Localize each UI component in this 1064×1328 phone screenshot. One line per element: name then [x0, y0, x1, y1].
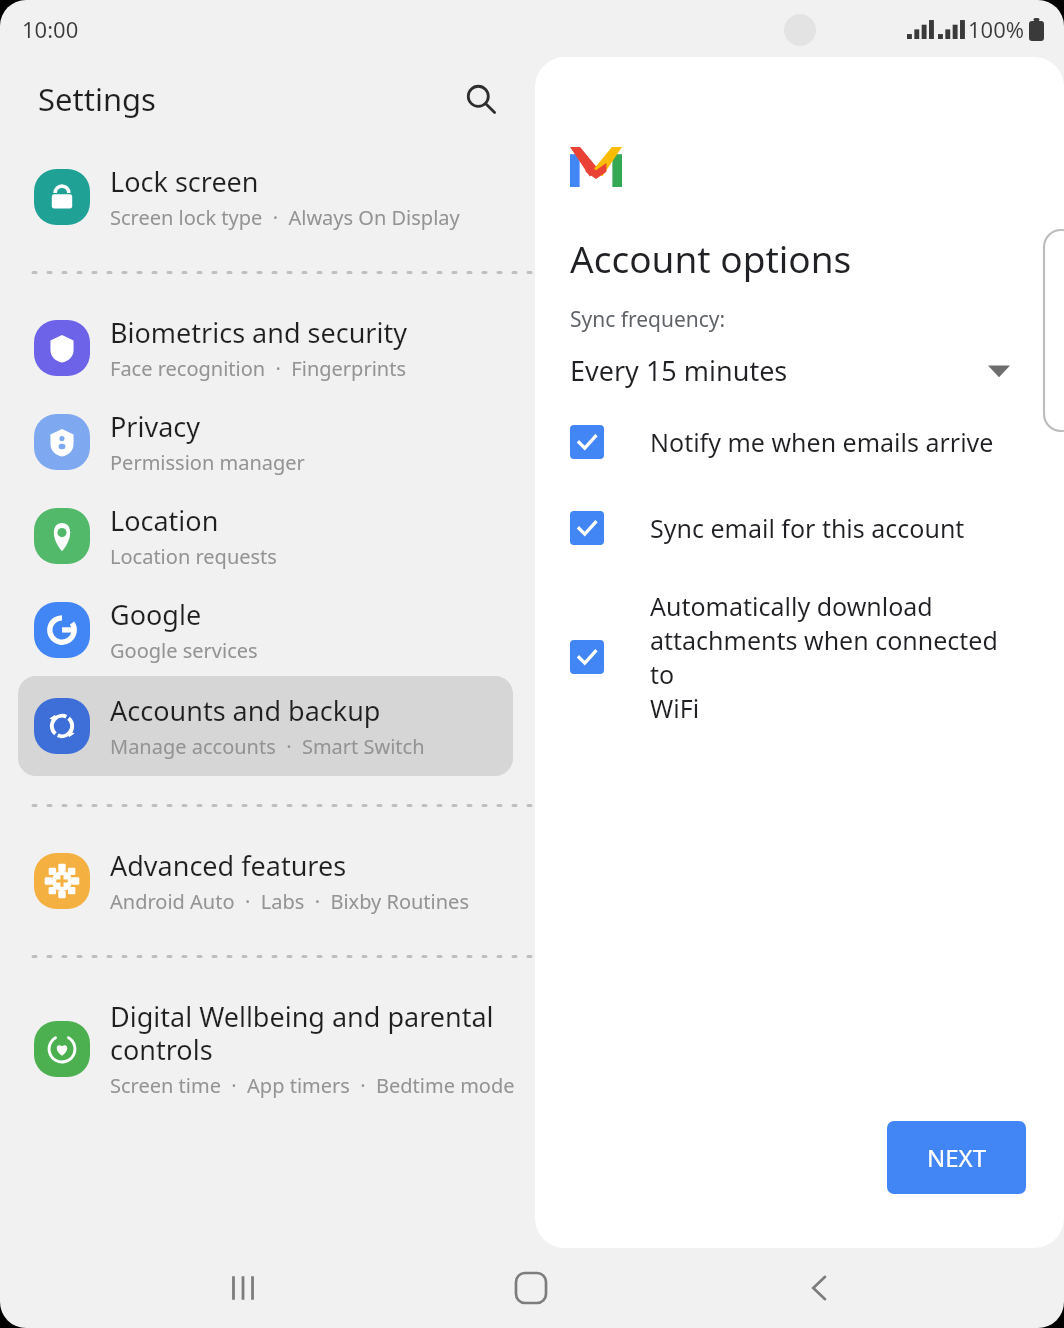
button[interactable]: Google — [0, 596, 1064, 664]
button[interactable]: Sync email for this account — [570, 511, 1036, 545]
staticText: Biometrics and security — [110, 314, 407, 351]
staticText: Screen time · App timers · Bedtime mode — [110, 1072, 515, 1099]
staticText: Settings — [38, 78, 156, 120]
staticText: Location requests — [110, 543, 277, 570]
staticText: Location — [110, 502, 219, 539]
button[interactable]: Location — [0, 502, 1064, 570]
button[interactable]: Every 15 minutes — [570, 352, 1036, 389]
staticText: Sync email for this account — [650, 511, 965, 545]
staticText: Google — [110, 596, 202, 633]
button[interactable]: Accounts and backup — [18, 676, 513, 776]
staticText: Manage accounts · Smart Switch — [110, 733, 425, 760]
button[interactable]: Lock screen — [0, 163, 1064, 231]
button[interactable]: Search — [452, 70, 510, 128]
staticText: Every 15 minutes — [570, 352, 788, 389]
button[interactable]: Automatically download attachments when … — [570, 589, 1036, 725]
staticText: Sync frequency: — [570, 305, 726, 334]
staticText: Automatically download attachments when … — [650, 589, 1018, 725]
staticText: Digital Wellbeing and parental controls — [110, 998, 494, 1068]
staticText: Face recognition · Fingerprints — [110, 355, 406, 382]
button[interactable]: Biometrics and security — [0, 314, 1064, 382]
button[interactable]: Home — [486, 1248, 576, 1328]
button[interactable]: Notify me when emails arrive — [570, 425, 1036, 459]
staticText: Screen lock type · Always On Display — [110, 204, 460, 231]
staticText: Google services — [110, 637, 258, 664]
button[interactable]: NEXT — [887, 1121, 1026, 1194]
staticText: Lock screen — [110, 163, 259, 200]
staticText: 100% — [968, 14, 1025, 44]
button[interactable]: Digital Wellbeing and parental controls — [0, 998, 1064, 1099]
staticText: Advanced features — [110, 847, 347, 884]
staticText: Account options — [570, 233, 852, 283]
staticText: 10:00 — [22, 14, 79, 44]
staticText: Android Auto · Labs · Bixby Routines — [110, 888, 469, 915]
staticText: Privacy — [110, 408, 201, 445]
staticText: NEXT — [927, 1141, 986, 1174]
button[interactable]: Privacy — [0, 408, 1064, 476]
staticText: Accounts and backup — [110, 692, 381, 729]
button[interactable]: Advanced features — [0, 847, 1064, 915]
button[interactable]: Recents — [198, 1248, 288, 1328]
button[interactable]: Back — [775, 1248, 865, 1328]
staticText: Notify me when emails arrive — [650, 425, 994, 459]
staticText: Permission manager — [110, 449, 305, 476]
